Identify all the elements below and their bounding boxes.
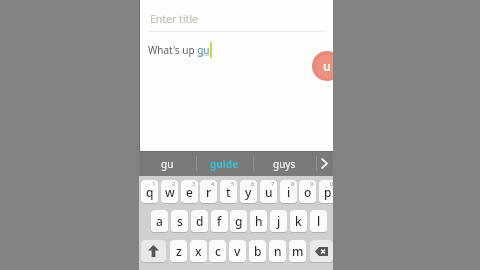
staticText: k xyxy=(295,213,302,229)
button[interactable]: gu xyxy=(139,151,196,176)
button[interactable]: u xyxy=(260,180,277,203)
button[interactable]: a xyxy=(151,210,168,232)
staticText: u xyxy=(265,184,273,200)
button[interactable]: e xyxy=(181,180,198,203)
staticText: 2 xyxy=(172,180,176,188)
staticText: w xyxy=(165,184,175,200)
staticText: f xyxy=(217,213,222,229)
staticText: t xyxy=(226,184,231,200)
button[interactable]: p xyxy=(319,180,333,203)
staticText: What's up gu xyxy=(148,43,210,57)
button[interactable]: y xyxy=(240,180,257,203)
staticText: 6 xyxy=(251,180,255,188)
button[interactable] xyxy=(310,240,333,262)
staticText: b xyxy=(254,243,262,259)
button[interactable]: n xyxy=(269,240,286,262)
staticText: i xyxy=(287,184,291,200)
button[interactable]: l xyxy=(310,210,327,232)
staticText: u xyxy=(323,58,331,74)
staticText: s xyxy=(177,213,183,229)
button[interactable]: guide xyxy=(196,151,253,176)
staticText: gu xyxy=(161,157,174,171)
button[interactable]: s xyxy=(171,210,188,232)
button[interactable]: z xyxy=(170,240,187,262)
button[interactable]: q xyxy=(141,180,158,203)
staticText: guys xyxy=(273,157,296,171)
staticText: Enter title xyxy=(150,12,199,26)
staticText: 9 xyxy=(310,180,314,188)
button[interactable]: o xyxy=(299,180,316,203)
staticText: 0 xyxy=(330,180,333,188)
button[interactable]: c xyxy=(209,240,226,262)
button[interactable]: f xyxy=(211,210,228,232)
staticText: o xyxy=(304,184,312,200)
staticText: e xyxy=(186,184,193,200)
button[interactable] xyxy=(141,240,166,262)
staticText: y xyxy=(245,184,252,200)
button[interactable] xyxy=(316,151,333,176)
button[interactable]: t xyxy=(220,180,237,203)
staticText: n xyxy=(274,243,282,259)
button[interactable]: What's up gu xyxy=(148,42,212,58)
button[interactable]: b xyxy=(249,240,266,262)
button[interactable]: i xyxy=(280,180,297,203)
staticText: 4 xyxy=(211,180,215,188)
button[interactable]: d xyxy=(191,210,208,232)
button[interactable]: Enter title xyxy=(150,12,199,26)
button[interactable]: h xyxy=(250,210,267,232)
button[interactable]: j xyxy=(270,210,287,232)
staticText: v xyxy=(234,243,241,259)
button[interactable]: guys xyxy=(253,151,316,176)
staticText: l xyxy=(317,213,321,229)
staticText: m xyxy=(292,243,304,259)
button[interactable]: r xyxy=(200,180,217,203)
button[interactable]: m xyxy=(289,240,306,262)
button[interactable]: x xyxy=(190,240,207,262)
button[interactable]: g xyxy=(230,210,247,232)
staticText: d xyxy=(196,213,204,229)
staticText: 7 xyxy=(271,180,275,188)
staticText: guide xyxy=(210,157,239,171)
staticText: a xyxy=(156,213,163,229)
staticText: q xyxy=(146,184,154,200)
staticText: p xyxy=(324,184,332,200)
button[interactable]: v xyxy=(229,240,246,262)
staticText: c xyxy=(215,243,221,259)
staticText: x xyxy=(195,243,202,259)
staticText: g xyxy=(235,213,243,229)
staticText: h xyxy=(255,213,263,229)
staticText: 3 xyxy=(192,180,196,188)
button[interactable]: w xyxy=(161,180,178,203)
staticText: 5 xyxy=(231,180,235,188)
staticText: r xyxy=(206,184,212,200)
button[interactable]: u xyxy=(312,51,333,81)
staticText: z xyxy=(176,243,182,259)
staticText: j xyxy=(277,213,281,229)
staticText: 8 xyxy=(291,180,295,188)
staticText: 1 xyxy=(152,180,156,188)
button[interactable]: k xyxy=(290,210,307,232)
